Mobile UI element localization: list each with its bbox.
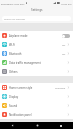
staticText: Settings bbox=[31, 8, 43, 12]
staticText: off bbox=[62, 43, 66, 46]
staticText: 10:04 PM bbox=[61, 2, 72, 5]
button[interactable]: Sound bbox=[0, 101, 73, 110]
button[interactable]: Search for settings bbox=[2, 16, 71, 21]
button[interactable]: Airplane mode bbox=[0, 31, 73, 40]
staticText: off bbox=[62, 52, 66, 55]
staticText: Display bbox=[9, 95, 19, 99]
staticText: Airplane mode bbox=[9, 34, 28, 38]
button[interactable]: Notification panel bbox=[0, 110, 73, 119]
button[interactable]: Others bbox=[0, 67, 73, 76]
button[interactable]: Bluetooth bbox=[0, 49, 73, 58]
staticText: Emergency calls only bbox=[1, 2, 25, 5]
button[interactable]: Data traffic management bbox=[0, 58, 73, 67]
button[interactable]: Back bbox=[0, 122, 25, 129]
staticText: Others bbox=[9, 70, 18, 74]
button[interactable]: Recent apps bbox=[49, 122, 73, 129]
staticText: Sound bbox=[9, 104, 18, 108]
staticText: Home screen style bbox=[9, 86, 33, 90]
button[interactable]: Home bbox=[25, 122, 49, 129]
staticText: Standard bbox=[55, 86, 66, 89]
button[interactable]: Wi-Fi bbox=[0, 40, 73, 49]
staticText: Bluetooth bbox=[9, 52, 22, 56]
staticText: Search for settings bbox=[4, 17, 25, 20]
staticText: Data traffic management bbox=[9, 61, 41, 65]
staticText: Notification panel bbox=[9, 113, 32, 117]
staticText: Wi-Fi bbox=[9, 43, 16, 47]
button[interactable]: Display bbox=[0, 92, 73, 101]
button[interactable]: Home screen style bbox=[0, 83, 73, 92]
